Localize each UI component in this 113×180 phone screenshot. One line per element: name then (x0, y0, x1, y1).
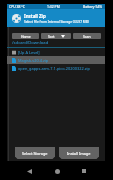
staticText: Home (21, 34, 31, 39)
staticText: Magisk-v20.4.zip (18, 58, 49, 63)
button[interactable]: open_gapps-arm-7.1-pico-20200322.zip (7, 64, 105, 72)
button[interactable]: Select Storage (15, 147, 55, 159)
staticText: Install Image (67, 151, 91, 156)
staticText: Select File from Internal Storage (33.97… (24, 20, 89, 24)
staticText: [Up A Level] (18, 50, 40, 55)
staticText: CPU 38 °C (9, 4, 25, 9)
button[interactable]: Magisk-v20.4.zip (7, 56, 105, 64)
button[interactable]: Home (12, 33, 39, 39)
button[interactable]: Install Image (59, 147, 99, 159)
staticText: Select Storage (22, 151, 48, 156)
button[interactable]: Install Zip (7, 9, 105, 27)
staticText: Install Zip (24, 13, 46, 19)
staticText: Scan (83, 34, 91, 39)
staticText: Battery 54% (83, 4, 103, 9)
button[interactable]: Home (50, 164, 64, 178)
staticText: open_gapps-arm-7.1-pico-20200322.zip (18, 66, 90, 71)
staticText: /sdcard/Download (12, 40, 49, 46)
button[interactable]: Sort (41, 33, 71, 39)
button[interactable]: [Up A Level] (7, 48, 105, 56)
staticText: Sort (48, 34, 55, 39)
button[interactable]: Scan (73, 33, 101, 39)
button[interactable]: Back (22, 164, 36, 178)
button[interactable]: Recent apps (77, 164, 91, 178)
staticText: 1:32 PM (47, 4, 60, 9)
